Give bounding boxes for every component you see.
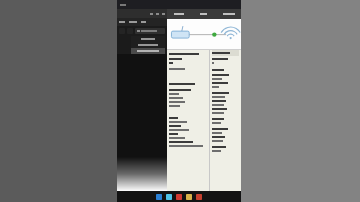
button[interactable] (119, 20, 125, 24)
button[interactable] (216, 9, 241, 19)
button[interactable]: Taskbar app 4 (196, 194, 202, 200)
button[interactable]: Taskbar app 2 (176, 194, 182, 200)
button[interactable] (131, 36, 165, 42)
button[interactable] (131, 48, 165, 54)
button[interactable]: Taskbar app 3 (186, 194, 192, 200)
button[interactable] (129, 20, 137, 24)
button[interactable] (141, 20, 146, 24)
button[interactable]: Taskbar app 1 (166, 194, 172, 200)
button[interactable] (167, 9, 191, 19)
button[interactable] (191, 9, 216, 19)
button[interactable] (131, 42, 165, 48)
button[interactable] (135, 28, 165, 34)
button[interactable]: Taskbar app 0 (156, 194, 162, 200)
